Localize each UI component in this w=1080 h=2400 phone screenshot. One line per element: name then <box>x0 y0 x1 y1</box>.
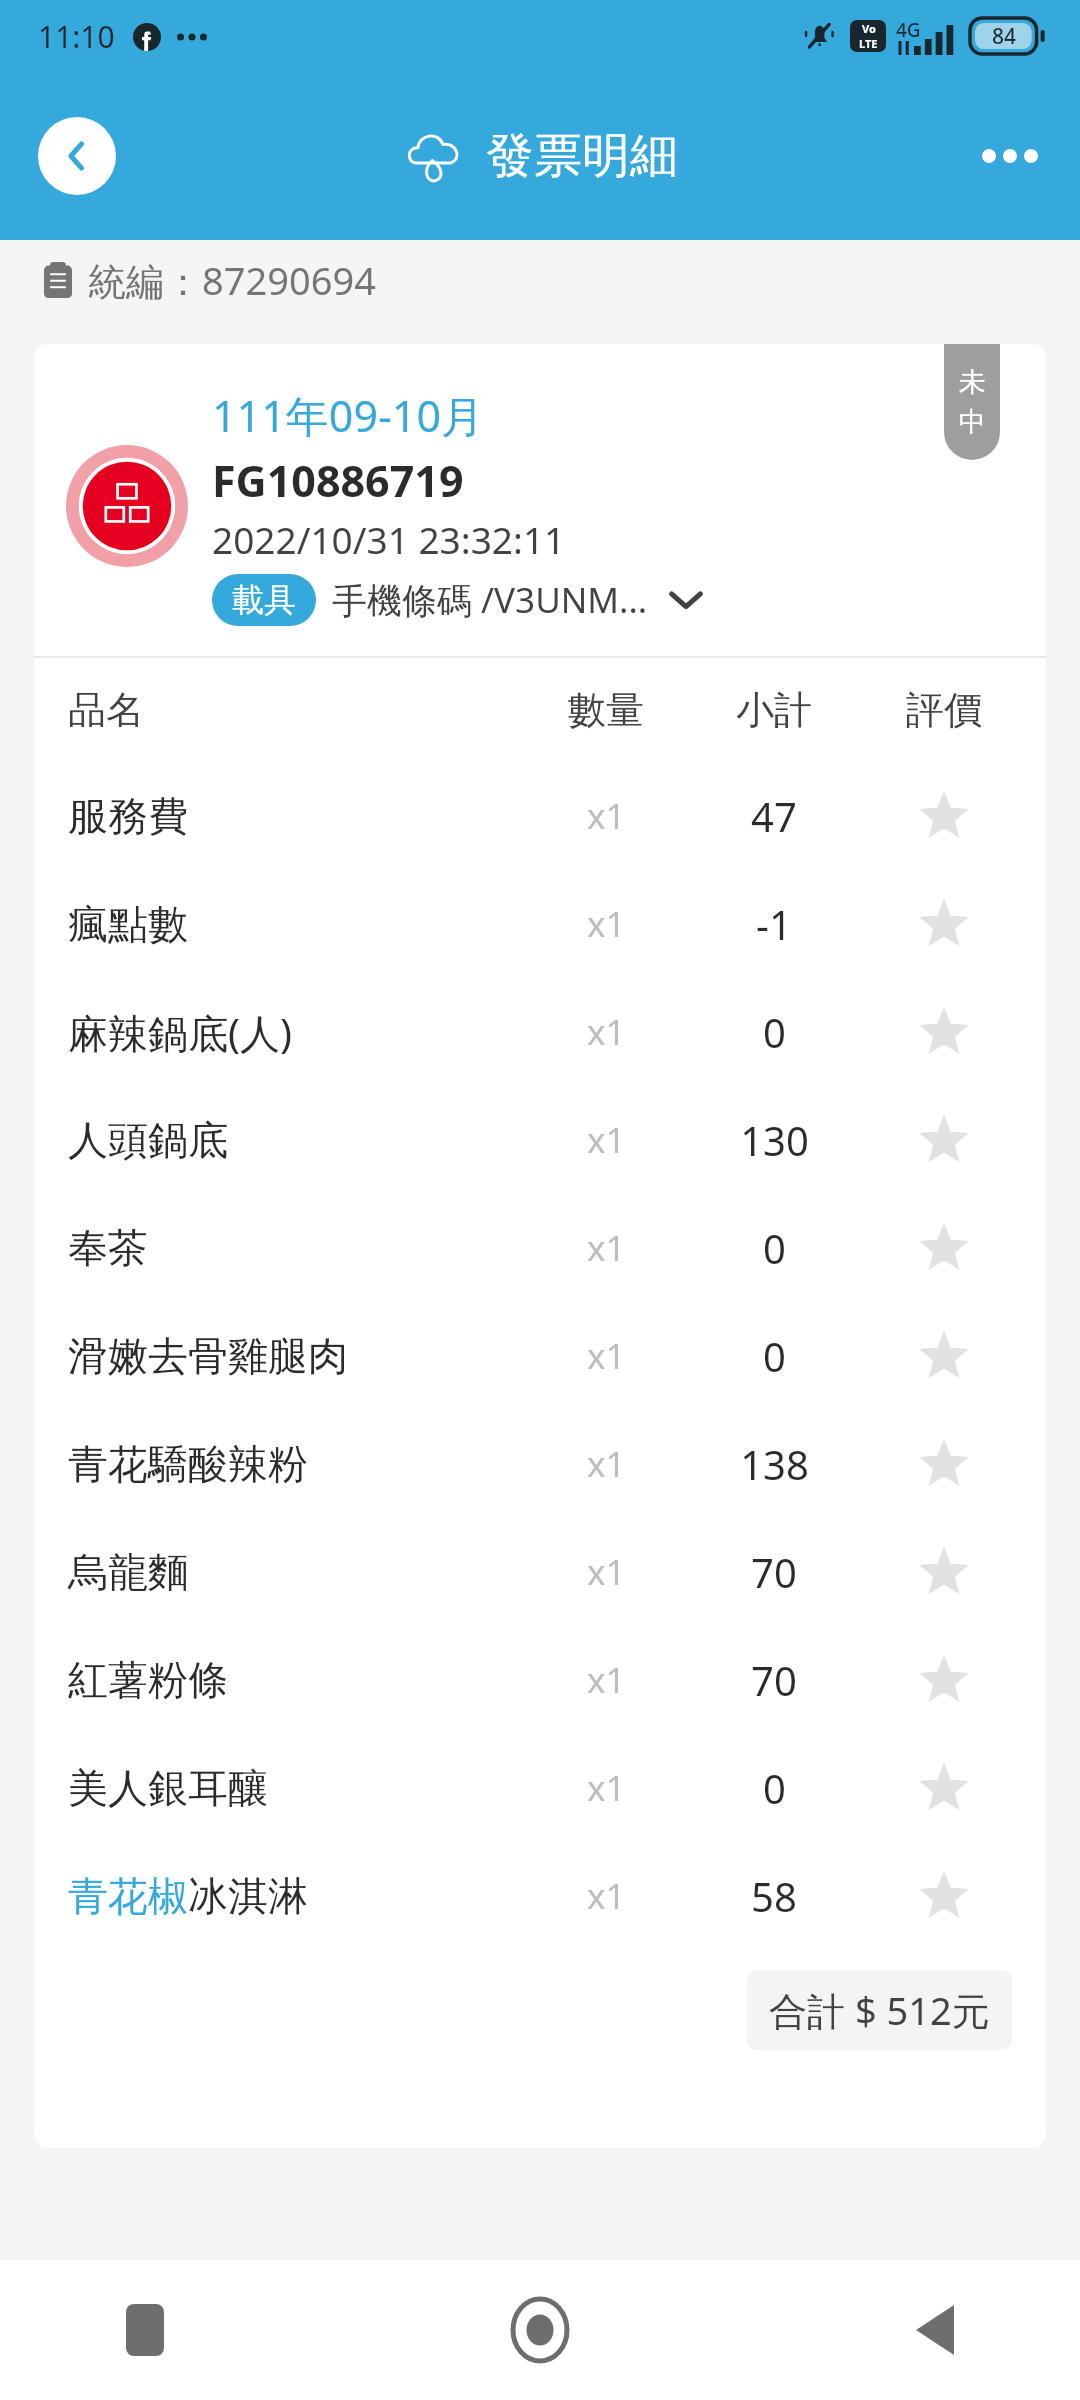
button[interactable]: 人頭鍋底 <box>34 1086 1046 1194</box>
button[interactable]: Rate 人頭鍋底 <box>884 1086 1004 1194</box>
staticText: x1 <box>587 1548 626 1596</box>
button[interactable]: Rate 美人銀耳釀 <box>884 1734 1004 1842</box>
staticText: x1 <box>587 792 626 840</box>
button[interactable]: Rate 瘋點數 <box>884 870 1004 978</box>
staticText: 47 <box>751 789 797 843</box>
staticText: -1 <box>756 897 792 951</box>
button[interactable]: 青花驕酸辣粉 <box>34 1410 1046 1518</box>
button[interactable]: 麻辣鍋底(人) <box>34 978 1046 1086</box>
staticText: 數量 <box>568 686 644 734</box>
button[interactable]: 滑嫩去骨雞腿肉 <box>34 1302 1046 1410</box>
staticText: 2022/10/31 23:32:11 <box>212 514 566 564</box>
button[interactable]: Rate 麻辣鍋底(人) <box>884 978 1004 1086</box>
button[interactable]: Rate 烏龍麵 <box>884 1518 1004 1626</box>
staticText: x1 <box>587 900 626 948</box>
staticText: FG10886719 <box>212 451 464 510</box>
staticText: 青花驕酸辣粉 <box>68 1439 308 1489</box>
staticText: 130 <box>740 1113 809 1167</box>
staticText: 服務費 <box>68 791 188 841</box>
staticText: x1 <box>587 1224 626 1272</box>
staticText: 合計 $ 512元 <box>769 1984 990 2036</box>
button[interactable]: Rate 奉茶 <box>884 1194 1004 1302</box>
staticText: 紅薯粉條 <box>68 1655 228 1705</box>
button[interactable]: 美人銀耳釀 <box>34 1734 1046 1842</box>
button[interactable]: Rate 青花椒冰淇淋 <box>884 1842 1004 1950</box>
staticText: Vo <box>862 21 876 36</box>
staticText: 奉茶 <box>68 1223 148 1273</box>
staticText: 4G <box>896 17 921 43</box>
button[interactable]: Rate 青花驕酸辣粉 <box>884 1410 1004 1518</box>
staticText: 人頭鍋底 <box>68 1115 228 1165</box>
staticText: x1 <box>587 1872 626 1920</box>
button[interactable]: 服務費 <box>34 762 1046 870</box>
staticText: 70 <box>751 1653 797 1707</box>
staticText: 瘋點數 <box>68 899 188 949</box>
staticText: 中 <box>959 405 986 439</box>
staticText: x1 <box>587 1440 626 1488</box>
staticText: 評價 <box>906 686 982 734</box>
staticText: 統編：87290694 <box>88 254 376 306</box>
button[interactable]: Rate 紅薯粉條 <box>884 1626 1004 1734</box>
staticText: 烏龍麵 <box>68 1547 188 1597</box>
button[interactable]: More options <box>966 112 1054 200</box>
staticText: 11:10 <box>38 16 115 57</box>
staticText: x1 <box>587 1656 626 1704</box>
staticText: 0 <box>763 1221 786 1275</box>
button[interactable]: Rate 服務費 <box>884 762 1004 870</box>
staticText: x1 <box>587 1116 626 1164</box>
staticText: 載具 <box>232 580 296 620</box>
staticText: 未 <box>959 365 986 399</box>
staticText: 58 <box>751 1869 797 1923</box>
button[interactable]: Back <box>38 117 116 195</box>
staticText: 滑嫩去骨雞腿肉 <box>68 1331 348 1381</box>
staticText: 111年09-10月 <box>212 386 485 445</box>
staticText: 70 <box>751 1545 797 1599</box>
staticText: 青花椒冰淇淋 <box>68 1871 308 1921</box>
button[interactable]: 奉茶 <box>34 1194 1046 1302</box>
button[interactable]: 載具 <box>212 574 704 626</box>
button[interactable]: 烏龍麵 <box>34 1518 1046 1626</box>
staticText: 0 <box>763 1761 786 1815</box>
staticText: x1 <box>587 1332 626 1380</box>
staticText: LTE <box>859 36 878 51</box>
button[interactable]: Recent apps <box>90 2275 200 2385</box>
staticText: x1 <box>587 1008 626 1056</box>
staticText: 發票明細 <box>486 126 678 186</box>
staticText: 0 <box>763 1329 786 1383</box>
staticText: 麻辣鍋底(人) <box>68 1005 292 1060</box>
button[interactable]: 瘋點數 <box>34 870 1046 978</box>
staticText: 美人銀耳釀 <box>68 1763 268 1813</box>
button[interactable]: Back <box>880 2275 990 2385</box>
staticText: x1 <box>587 1764 626 1812</box>
staticText: 小計 <box>736 686 812 734</box>
button[interactable]: 紅薯粉條 <box>34 1626 1046 1734</box>
button[interactable]: Rate 滑嫩去骨雞腿肉 <box>884 1302 1004 1410</box>
staticText: 手機條碼 /V3UNM... <box>332 576 648 624</box>
staticText: 84 <box>992 22 1017 51</box>
button[interactable]: Home <box>485 2275 595 2385</box>
staticText: 138 <box>740 1437 809 1491</box>
staticText: 品名 <box>68 686 144 734</box>
button[interactable]: 青花椒冰淇淋 <box>34 1842 1046 1950</box>
staticText: 0 <box>763 1005 786 1059</box>
